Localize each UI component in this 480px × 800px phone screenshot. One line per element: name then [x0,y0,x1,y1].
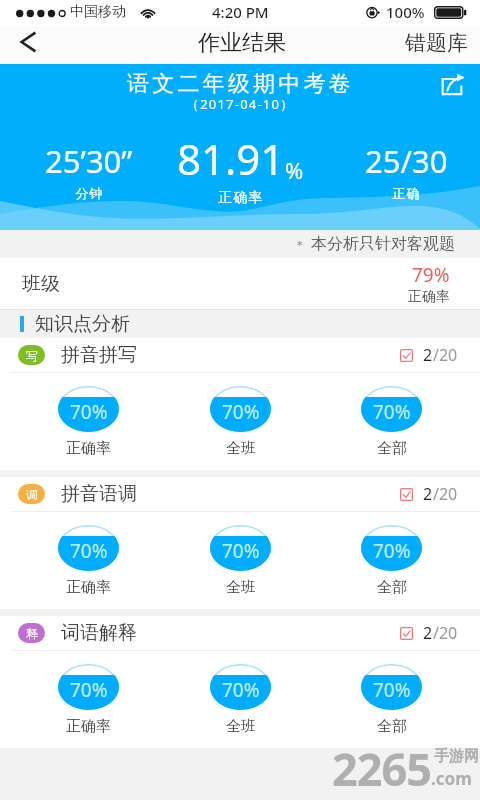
button[interactable]: 错题库 [392,26,480,64]
staticText: 知识点分析 [35,312,130,336]
staticText: /20 [433,622,458,644]
staticText: 正确率 [408,288,450,306]
staticText: 全班 [226,717,256,736]
staticText: 分钟 [75,185,103,201]
button[interactable]: 班级 [0,258,480,310]
staticText: 正确率 [66,578,111,597]
staticText: （2017-04-10） [186,95,295,113]
button[interactable]: Back [0,26,55,64]
staticText: 手游网 [434,747,479,766]
staticText: 正确率 [66,439,111,458]
staticText: 全班 [226,439,256,458]
staticText: 100% [386,2,425,22]
staticText: 25’30” [45,140,133,182]
staticText: 70% [222,538,260,564]
staticText: 全部 [377,439,407,458]
staticText: ＊ [294,237,306,252]
staticText: .com [431,767,472,790]
staticText: 拼音拼写 [61,343,137,367]
staticText: 语文二年级期中考卷 [127,70,354,98]
staticText: /20 [433,344,458,366]
staticText: 70% [70,538,108,564]
staticText: % [285,155,304,185]
staticText: 调 [26,487,38,502]
staticText: 全部 [377,578,407,597]
staticText: 班级 [22,272,60,296]
staticText: 错题库 [405,30,468,56]
staticText: 70% [70,399,108,425]
button[interactable]: 写 [0,338,480,372]
staticText: 4:20 PM [212,2,269,22]
staticText: 79% [412,262,450,288]
staticText: 全班 [226,578,256,597]
staticText: 70% [222,399,260,425]
button[interactable]: 释 [0,616,480,650]
staticText: 拼音语调 [61,482,137,506]
staticText: 81.91 [177,130,285,187]
staticText: 25/30 [365,140,448,182]
staticText: 70% [373,399,411,425]
button[interactable]: Share [436,70,468,100]
staticText: /20 [433,483,458,505]
staticText: 70% [373,538,411,564]
staticText: 正确率 [218,189,263,207]
staticText: 2265 [332,738,431,799]
staticText: 70% [222,677,260,703]
staticText: 2 [423,483,433,505]
staticText: 全部 [377,717,407,736]
staticText: 70% [373,677,411,703]
staticText: 本分析只针对客观题 [311,234,455,254]
staticText: 70% [70,677,108,703]
staticText: 词语解释 [61,621,137,645]
staticText: 2 [423,622,433,644]
staticText: 作业结果 [198,29,286,57]
staticText: 2 [423,344,433,366]
button[interactable]: 调 [0,477,480,511]
staticText: 写 [26,348,38,363]
staticText: 正确 [392,185,420,201]
staticText: 正确率 [66,717,111,736]
staticText: 释 [26,626,38,641]
staticText: 中国移动 [70,3,126,21]
